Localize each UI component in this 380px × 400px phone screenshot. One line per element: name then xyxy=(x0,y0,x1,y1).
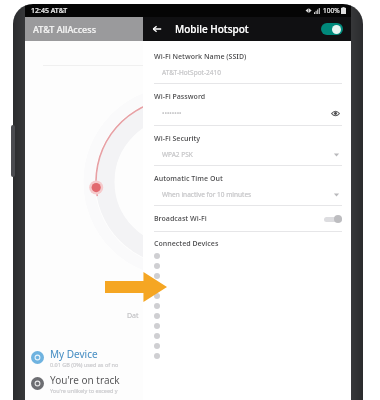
staticText: Broadcast Wi-Fi xyxy=(154,214,324,224)
staticText: •••••••• xyxy=(162,109,331,118)
staticText: Mobile Hotspot xyxy=(175,22,249,36)
staticText: My Device xyxy=(50,347,98,361)
button[interactable]: Wi-Fi Network Name (SSID) xyxy=(154,52,342,92)
staticText: Connected Devices xyxy=(154,239,219,249)
button[interactable]: Wi-Fi Security xyxy=(154,134,342,174)
staticText: AT&T-HotSpot-2410 xyxy=(162,68,333,77)
staticText: 0.01 GB (0%) used as of no xyxy=(50,361,119,368)
staticText: You're on track xyxy=(50,373,120,387)
button[interactable]: AT&T AllAccess xyxy=(25,17,143,41)
button[interactable]: My Device xyxy=(31,347,143,368)
button[interactable]: Broadcast Wi-Fi xyxy=(154,214,342,232)
button[interactable]: Back xyxy=(148,20,166,38)
staticText: Dat xyxy=(127,311,139,321)
button[interactable]: Automatic Time Out xyxy=(154,174,342,214)
button[interactable]: You're on track xyxy=(31,373,143,394)
staticText: 12:45 AT&T xyxy=(31,6,68,16)
staticText: You're unlikely to exceed y xyxy=(50,387,118,394)
staticText: Wi-Fi Security xyxy=(154,134,201,144)
staticText: WPA2 PSK xyxy=(162,150,333,159)
staticText: Wi-Fi Password xyxy=(154,92,206,102)
staticText: 100% xyxy=(323,6,340,15)
button[interactable]: Wi-Fi Password xyxy=(154,92,342,134)
staticText: Automatic Time Out xyxy=(154,174,223,184)
staticText: When inactive for 10 minutes xyxy=(162,190,333,199)
staticText: Wi-Fi Network Name (SSID) xyxy=(154,52,247,62)
button[interactable]: Mobile Hotspot on xyxy=(321,23,343,35)
staticText: AT&T AllAccess xyxy=(33,23,97,35)
